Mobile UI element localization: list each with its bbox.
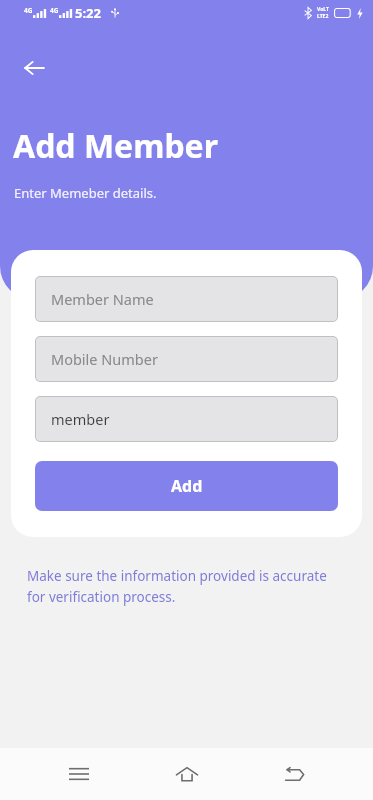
staticText: VoLT	[317, 6, 329, 13]
staticText: Mobile Number	[51, 349, 158, 369]
button[interactable]: Home	[159, 748, 215, 800]
staticText: 5:22	[75, 4, 101, 22]
button[interactable]: Recent apps	[51, 748, 107, 800]
staticText: member	[51, 409, 110, 429]
staticText: Add Member	[13, 124, 219, 168]
button[interactable]: Mobile Number	[35, 336, 338, 382]
staticText: 4G	[24, 6, 33, 15]
button[interactable]: Back	[10, 44, 58, 92]
button[interactable]: member	[35, 396, 338, 442]
button[interactable]: Member Name	[35, 276, 338, 322]
button[interactable]: Add	[35, 461, 338, 511]
staticText: Member Name	[51, 289, 154, 309]
staticText: Make sure the information provided is ac…	[27, 567, 327, 606]
staticText: LTE2	[317, 13, 329, 20]
staticText: Add	[171, 475, 203, 497]
staticText: Enter Memeber details.	[14, 184, 157, 202]
button[interactable]: Back	[266, 748, 322, 800]
staticText: 4G	[50, 6, 59, 15]
